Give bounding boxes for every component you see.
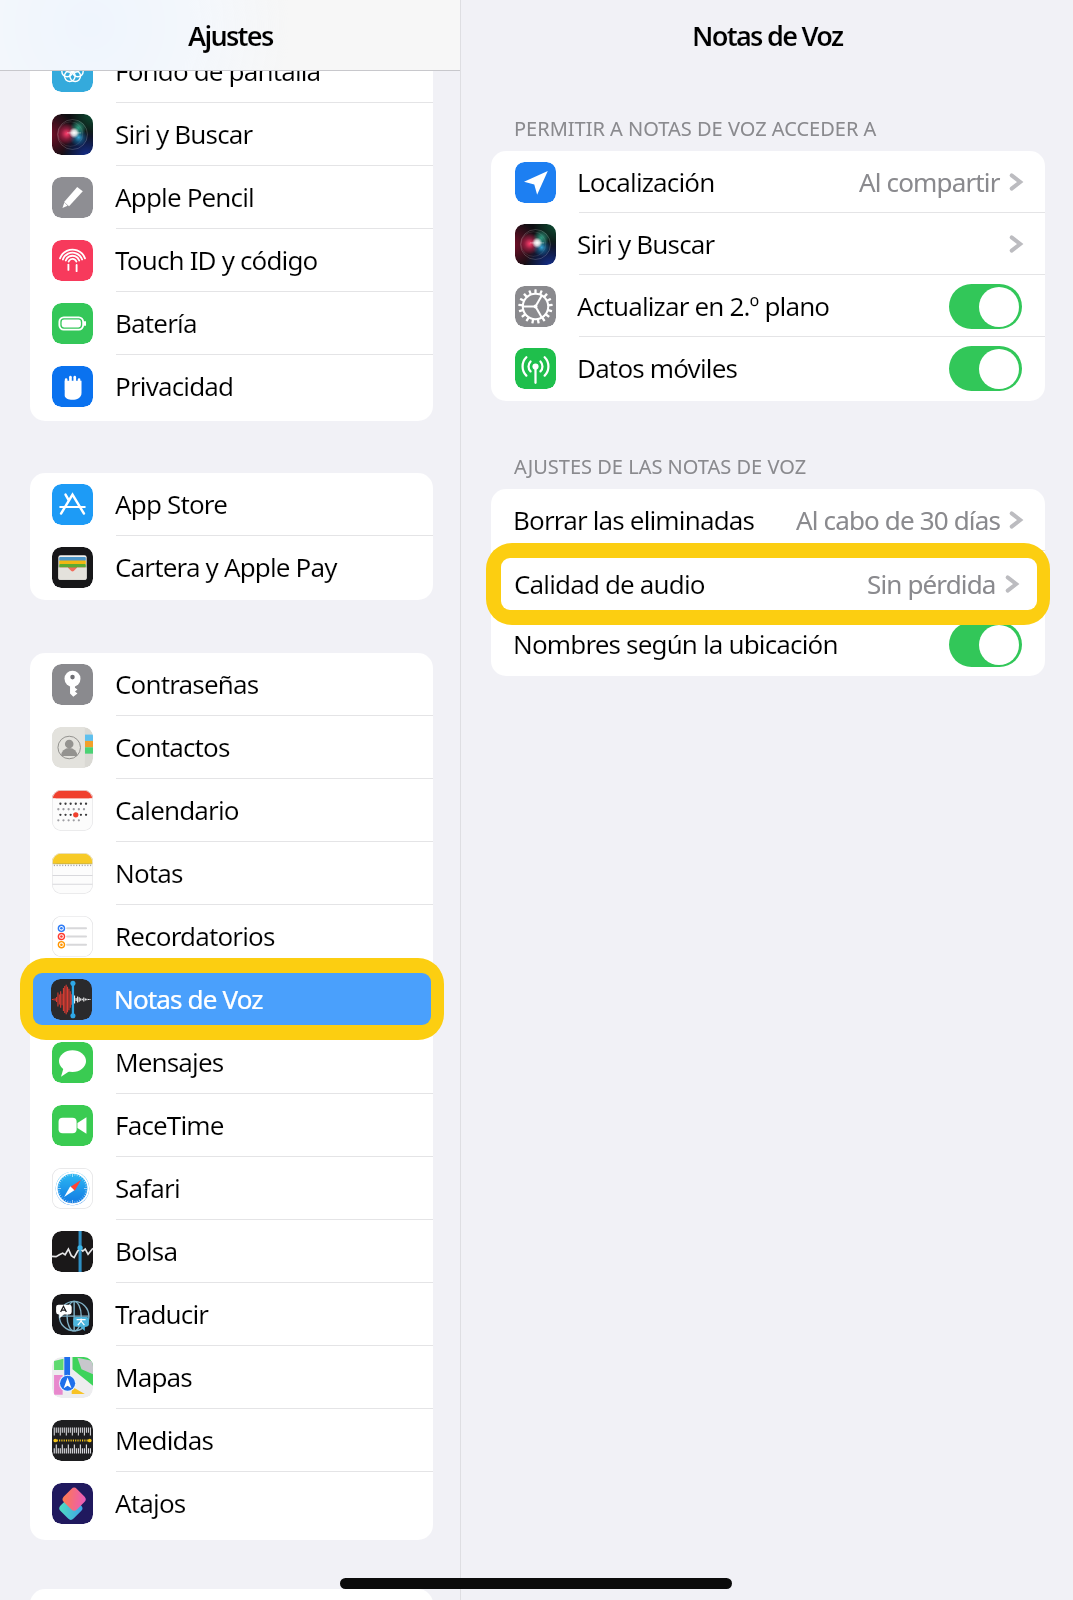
staticText: Cartera y Apple Pay: [115, 549, 337, 584]
button[interactable]: Mensajes: [30, 1031, 433, 1094]
staticText: Siri y Buscar: [577, 226, 715, 261]
button[interactable]: Medidas: [30, 1409, 433, 1472]
button[interactable]: Localización: [491, 151, 1045, 213]
button[interactable]: Atajos: [30, 1472, 433, 1535]
button[interactable]: Notas: [30, 842, 433, 905]
button[interactable]: Datos móviles: [491, 337, 1045, 399]
button[interactable]: Apple Pencil: [30, 166, 433, 229]
staticText: Atajos: [115, 1485, 186, 1520]
staticText: Localización: [577, 164, 715, 199]
staticText: Siri y Buscar: [115, 116, 253, 151]
button[interactable]: Actualizar en 2.º plano activado: [949, 284, 1022, 329]
button[interactable]: Traducir: [30, 1283, 433, 1346]
button[interactable]: Privacidad: [30, 355, 433, 418]
staticText: App Store: [115, 486, 227, 521]
staticText: Borrar las eliminadas: [513, 502, 755, 537]
staticText: Bolsa: [115, 1233, 178, 1268]
staticText: Datos móviles: [577, 350, 738, 385]
staticText: Notas de Voz: [114, 981, 263, 1016]
button[interactable]: Mapas: [30, 1346, 433, 1409]
button[interactable]: Batería: [30, 292, 433, 355]
staticText: PERMITIR A NOTAS DE VOZ ACCEDER A: [514, 115, 877, 142]
button[interactable]: Datos móviles activado: [949, 346, 1022, 391]
staticText: Al cabo de 30 días: [796, 502, 1000, 537]
button[interactable]: Safari: [30, 1157, 433, 1220]
staticText: Ajustes: [188, 17, 273, 54]
button[interactable]: Touch ID y código: [30, 229, 433, 292]
staticText: Notas de Voz: [692, 17, 843, 54]
button[interactable]: Actualizar en 2.º plano: [491, 275, 1045, 337]
staticText: Touch ID y código: [115, 242, 318, 277]
button[interactable]: Notas de Voz: [30, 968, 433, 1031]
staticText: Actualizar en 2.º plano: [577, 288, 830, 323]
staticText: Sin pérdida: [871, 564, 1000, 599]
staticText: Privacidad: [115, 368, 234, 403]
staticText: Fondo de pantalla: [115, 53, 321, 88]
staticText: Medidas: [115, 1422, 214, 1457]
staticText: Calidad de audio: [514, 566, 705, 601]
staticText: AJUSTES DE LAS NOTAS DE VOZ: [514, 453, 807, 480]
staticText: Calidad de audio: [513, 564, 704, 599]
button[interactable]: Bolsa: [30, 1220, 433, 1283]
button[interactable]: Fondo de pantalla: [30, 40, 433, 103]
staticText: Batería: [115, 305, 197, 340]
button[interactable]: Notas de Voz: [33, 973, 431, 1025]
button[interactable]: Nombres según la ubicación: [491, 613, 1045, 675]
staticText: Mapas: [115, 1359, 192, 1394]
staticText: Nombres según la ubicación: [513, 626, 838, 661]
staticText: FaceTime: [115, 1107, 224, 1142]
button[interactable]: Borrar las eliminadas: [491, 489, 1045, 551]
button[interactable]: Nombres según la ubicación activado: [949, 622, 1022, 667]
staticText: Safari: [115, 1170, 180, 1205]
button[interactable]: Recordatorios: [30, 905, 433, 968]
button[interactable]: FaceTime: [30, 1094, 433, 1157]
staticText: Contraseñas: [115, 666, 259, 701]
button[interactable]: Calidad de audio: [491, 551, 1045, 613]
button[interactable]: Siri y Buscar: [491, 213, 1045, 275]
button[interactable]: Cartera y Apple Pay: [30, 536, 433, 599]
staticText: Calendario: [115, 792, 239, 827]
button[interactable]: Contraseñas: [30, 653, 433, 716]
staticText: Contactos: [115, 729, 230, 764]
staticText: Notas: [115, 855, 183, 890]
staticText: Sin pérdida: [867, 566, 996, 601]
button[interactable]: Contactos: [30, 716, 433, 779]
staticText: Al compartir: [859, 164, 1000, 199]
button[interactable]: Siri y Buscar: [30, 103, 433, 166]
staticText: Notas de Voz: [115, 981, 264, 1016]
button[interactable]: App Store: [30, 473, 433, 536]
staticText: Mensajes: [115, 1044, 224, 1079]
staticText: Traducir: [115, 1296, 209, 1331]
staticText: Recordatorios: [115, 918, 275, 953]
button[interactable]: Calidad de audio: [501, 558, 1037, 610]
button[interactable]: Calendario: [30, 779, 433, 842]
staticText: Apple Pencil: [115, 179, 254, 214]
